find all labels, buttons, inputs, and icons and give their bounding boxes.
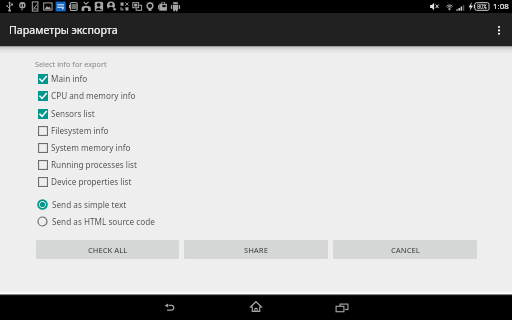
- staticText: Параметры экспорта: [9, 23, 118, 38]
- button[interactable]: Main info: [0, 70, 512, 87]
- staticText: 1:08: [493, 1, 509, 12]
- staticText: Main info: [51, 73, 88, 84]
- staticText: CPU and memory info: [51, 90, 136, 101]
- button[interactable]: Running processes list: [0, 156, 512, 173]
- button[interactable]: System memory info: [0, 139, 512, 156]
- button[interactable]: Back: [141, 294, 199, 320]
- staticText: Send as HTML source code: [52, 216, 155, 227]
- staticText: SHARE: [244, 245, 268, 255]
- button[interactable]: Home: [227, 294, 285, 320]
- staticText: CANCEL: [391, 245, 420, 255]
- button[interactable]: Send as simple text: [0, 196, 512, 213]
- button[interactable]: CANCEL: [333, 240, 477, 259]
- button[interactable]: Device properties list: [0, 173, 512, 190]
- button[interactable]: Sensors list: [0, 105, 512, 122]
- button[interactable]: SHARE: [184, 240, 328, 259]
- staticText: Device properties list: [51, 176, 132, 187]
- staticText: Sensors list: [51, 108, 95, 119]
- staticText: Select info for export: [35, 59, 107, 69]
- staticText: Filesystem info: [51, 125, 109, 136]
- button[interactable]: CPU and memory info: [0, 87, 512, 104]
- staticText: CHECK ALL: [88, 245, 128, 255]
- button[interactable]: Filesystem info: [0, 122, 512, 139]
- button[interactable]: Send as HTML source code: [0, 213, 512, 230]
- button[interactable]: Recent apps: [313, 294, 371, 320]
- button[interactable]: CHECK ALL: [36, 240, 179, 259]
- staticText: System memory info: [51, 142, 131, 153]
- staticText: Running processes list: [51, 159, 137, 170]
- button[interactable]: More options: [484, 13, 512, 46]
- staticText: Send as simple text: [52, 199, 127, 210]
